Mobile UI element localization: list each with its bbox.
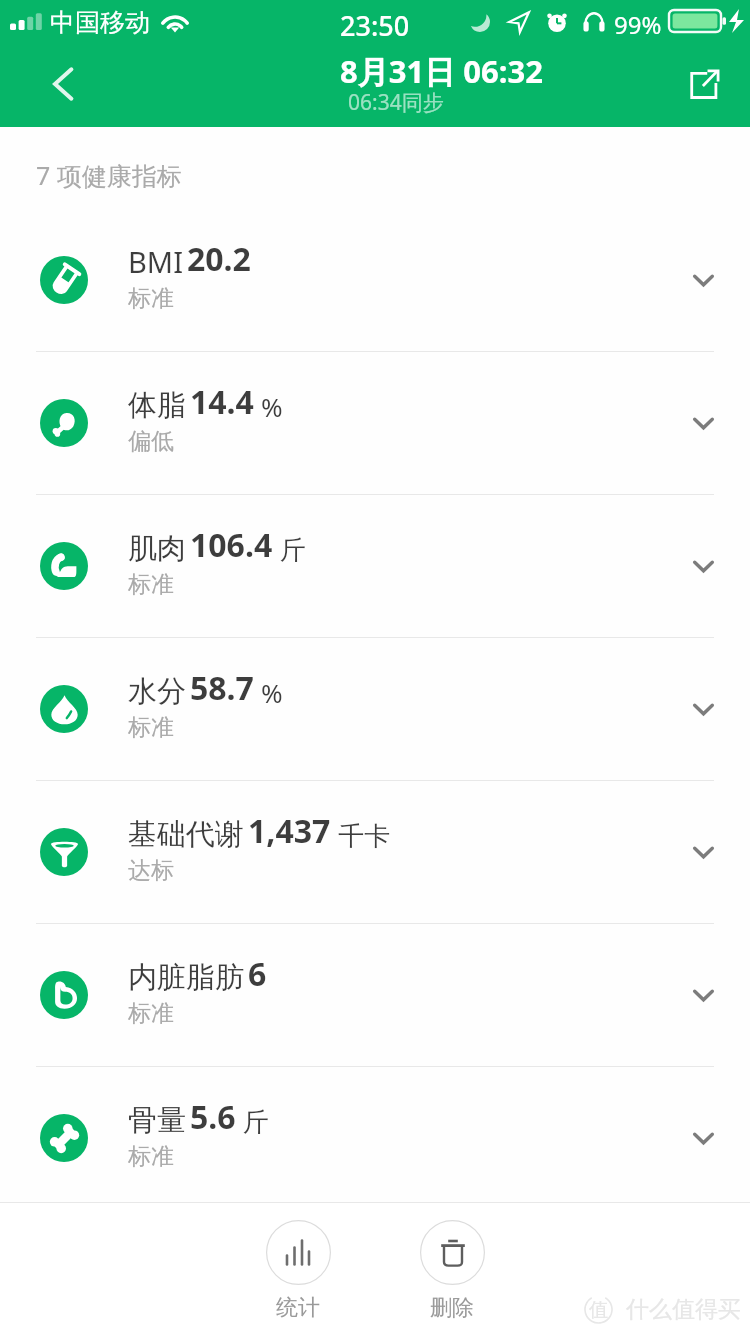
staticText: 20.2 bbox=[187, 237, 251, 281]
staticText: 8月31日 06:32 bbox=[340, 50, 543, 92]
staticText: 内脏脂肪 bbox=[128, 959, 244, 996]
staticText: 5.6 bbox=[190, 1095, 236, 1139]
button[interactable]: 内脏脂肪 bbox=[0, 924, 750, 1066]
staticText: 统计 bbox=[276, 1294, 320, 1322]
button[interactable]: 基础代谢 bbox=[0, 781, 750, 923]
staticText: 7 项健康指标 bbox=[36, 158, 182, 192]
button[interactable]: BMI bbox=[0, 209, 750, 351]
staticText: 基础代谢 bbox=[128, 816, 244, 853]
staticText: 中国移动 bbox=[50, 7, 150, 38]
button[interactable]: 统计 bbox=[222, 1202, 374, 1334]
staticText: 58.7 bbox=[190, 666, 254, 710]
staticText: 99% bbox=[614, 8, 662, 41]
staticText: 肌肉 bbox=[128, 530, 186, 567]
staticText: 标准 bbox=[128, 713, 174, 742]
button[interactable]: 水分 bbox=[0, 638, 750, 780]
staticText: 千卡 bbox=[338, 820, 390, 853]
staticText: 什么值得买 bbox=[626, 1295, 741, 1324]
staticText: 14.4 bbox=[190, 380, 254, 424]
button[interactable]: Share bbox=[662, 44, 744, 124]
staticText: 值 bbox=[589, 1298, 608, 1322]
staticText: 水分 bbox=[128, 673, 186, 710]
staticText: 标准 bbox=[128, 570, 174, 599]
button[interactable]: 骨量 bbox=[0, 1067, 750, 1209]
button[interactable]: Back bbox=[22, 44, 104, 124]
staticText: BMI bbox=[128, 242, 183, 281]
staticText: 达标 bbox=[128, 856, 174, 885]
staticText: 23:50 bbox=[340, 7, 410, 44]
staticText: 斤 bbox=[280, 534, 306, 567]
button[interactable]: 体脂 bbox=[0, 352, 750, 494]
staticText: 标准 bbox=[128, 999, 174, 1028]
staticText: 删除 bbox=[430, 1294, 474, 1322]
staticText: 斤 bbox=[243, 1106, 269, 1139]
staticText: 偏低 bbox=[128, 427, 174, 456]
staticText: 体脂 bbox=[128, 387, 186, 424]
staticText: 骨量 bbox=[128, 1102, 186, 1139]
staticText: % bbox=[261, 675, 283, 710]
button[interactable]: 肌肉 bbox=[0, 495, 750, 637]
staticText: 标准 bbox=[128, 1142, 174, 1171]
staticText: 6 bbox=[248, 952, 267, 996]
staticText: 标准 bbox=[128, 284, 174, 313]
staticText: 1,437 bbox=[248, 809, 331, 853]
button[interactable]: 删除 bbox=[376, 1202, 528, 1334]
staticText: % bbox=[261, 389, 283, 424]
staticText: 106.4 bbox=[190, 523, 273, 567]
staticText: 06:34同步 bbox=[348, 88, 444, 117]
